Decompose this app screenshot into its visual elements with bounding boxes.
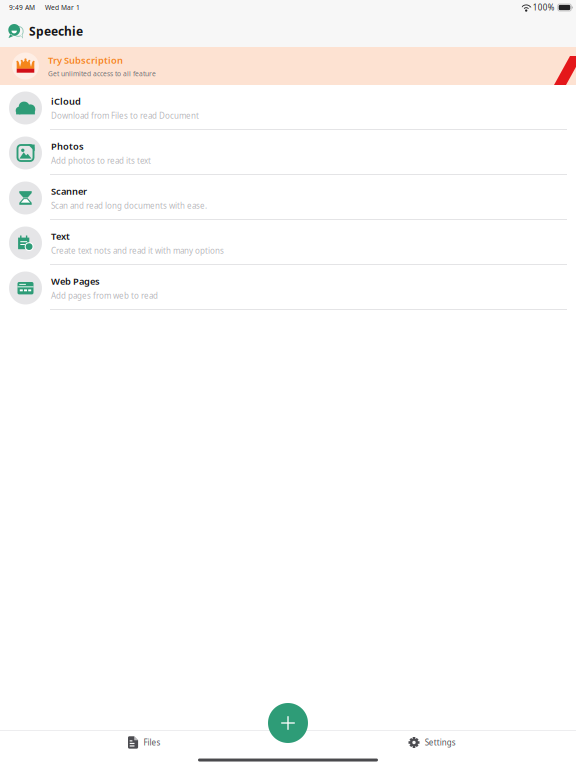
button[interactable]: iCloud	[0, 85, 576, 130]
staticText: Files	[143, 737, 160, 748]
staticText: 100%	[533, 2, 555, 13]
staticText: Settings	[425, 737, 456, 748]
button[interactable]: Text	[0, 220, 576, 265]
button[interactable]: Photos	[0, 130, 576, 175]
staticText: Web Pages	[51, 275, 100, 287]
button[interactable]: Settings	[288, 730, 576, 755]
button[interactable]: Web Pages	[0, 265, 576, 310]
staticText: Text	[51, 230, 70, 242]
button[interactable]: Files	[0, 730, 288, 755]
staticText: Scanner	[51, 185, 87, 197]
staticText: Scan and read long documents with ease.	[51, 200, 207, 211]
staticText: iCloud	[51, 95, 81, 107]
staticText: Get unlimited access to all feature	[48, 69, 156, 78]
staticText: 9:49 AM	[9, 3, 35, 12]
staticText: Speechie	[29, 23, 83, 39]
staticText: Add photos to read its text	[51, 155, 151, 166]
staticText: Photos	[51, 140, 84, 152]
staticText: Download from Files to read Document	[51, 110, 199, 121]
button[interactable]: Add	[268, 703, 308, 743]
staticText: Add pages from web to read	[51, 290, 158, 301]
staticText: Create text nots and read it with many o…	[51, 245, 224, 256]
button[interactable]: Try Subscription	[0, 47, 576, 85]
staticText: Try Subscription	[48, 54, 123, 66]
button[interactable]: Scanner	[0, 175, 576, 220]
staticText: Wed Mar 1	[45, 3, 80, 12]
